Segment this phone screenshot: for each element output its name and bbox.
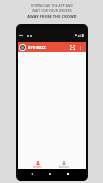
staticText: WAIT FOR YOUR ORDERS <box>32 9 72 13</box>
button[interactable]: Orders <box>27 159 48 169</box>
button[interactable]: Scan QR code <box>69 44 76 51</box>
staticText: Account <box>59 165 69 169</box>
button[interactable]: Home <box>46 170 54 178</box>
staticText: AWAY FROM THE CROWD <box>27 14 77 19</box>
staticText: Orders <box>33 165 42 169</box>
button[interactable]: Back <box>28 170 36 178</box>
button[interactable]: More options <box>78 45 83 50</box>
staticText: BYD BUZZ <box>28 45 46 50</box>
button[interactable]: Recents <box>64 170 72 178</box>
button[interactable]: Account <box>53 159 74 169</box>
staticText: DOWNLOAD THE APP AND <box>31 4 73 8</box>
